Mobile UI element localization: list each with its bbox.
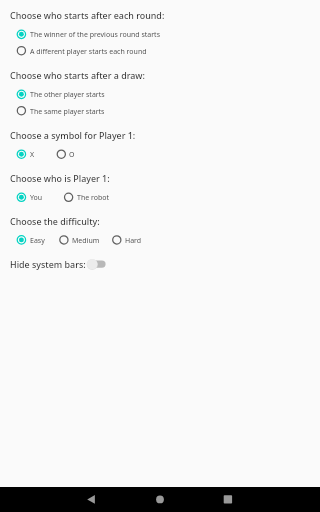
button[interactable]: X	[14, 145, 37, 161]
staticText: O	[69, 150, 75, 160]
button[interactable]: Hide system bars toggle	[85, 256, 109, 273]
staticText: The robot	[77, 193, 110, 203]
staticText: The other player starts	[30, 90, 105, 100]
button[interactable]: O	[54, 145, 76, 161]
button[interactable]: A different player starts each round	[14, 42, 148, 58]
button[interactable]: Easy	[14, 231, 48, 247]
staticText: Choose a symbol for Player 1:	[10, 129, 136, 141]
button[interactable]: The winner of the previous round starts	[14, 25, 162, 41]
button[interactable]: Home	[142, 487, 178, 512]
button[interactable]: Recent apps	[210, 487, 246, 512]
staticText: Choose the difficulty:	[10, 215, 100, 227]
staticText: Medium	[72, 236, 100, 246]
button[interactable]: The same player starts	[14, 102, 106, 118]
staticText: You	[30, 193, 43, 203]
button[interactable]: The other player starts	[14, 85, 106, 101]
staticText: Choose who starts after a draw:	[10, 69, 145, 81]
button[interactable]: The robot	[61, 188, 111, 204]
staticText: Hide system bars:	[10, 258, 86, 270]
staticText: Choose who is Player 1:	[10, 172, 110, 184]
staticText: Easy	[30, 236, 45, 246]
button[interactable]: You	[14, 188, 44, 204]
button[interactable]: Hard	[109, 231, 144, 247]
staticText: X	[30, 150, 35, 160]
button[interactable]: Medium	[56, 231, 101, 247]
staticText: A different player starts each round	[30, 47, 147, 57]
staticText: The winner of the previous round starts	[30, 30, 160, 40]
staticText: Choose who starts after each round:	[10, 9, 165, 21]
staticText: Hard	[125, 236, 142, 246]
button[interactable]: Back	[73, 487, 109, 512]
staticText: The same player starts	[30, 107, 105, 117]
